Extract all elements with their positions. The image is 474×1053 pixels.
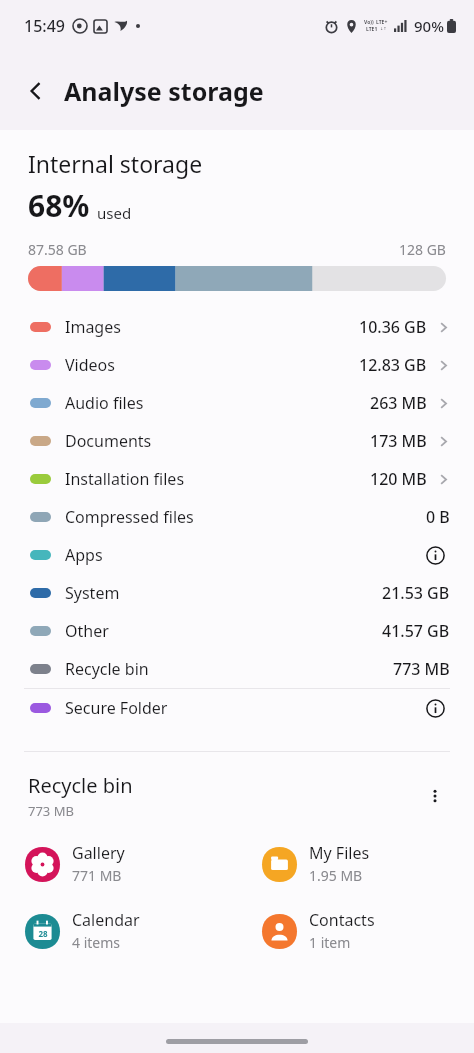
- button[interactable]: Compressed files: [0, 498, 474, 536]
- staticText: ↓↑: [380, 26, 387, 31]
- staticText: 41.57 GB: [382, 620, 450, 642]
- other: Info about Secure Folder: [420, 693, 450, 723]
- staticText: 1.95 MB: [309, 866, 363, 885]
- staticText: Compressed files: [65, 506, 426, 528]
- button[interactable]: Gallery: [0, 838, 237, 889]
- staticText: Internal storage: [28, 148, 203, 179]
- staticText: 4 items: [72, 933, 121, 952]
- staticText: 0 B: [426, 506, 450, 528]
- button[interactable]: Audio files: [0, 384, 474, 422]
- staticText: Analyse storage: [64, 74, 264, 108]
- staticText: Images: [65, 316, 359, 338]
- button[interactable]: Apps: [0, 536, 474, 574]
- staticText: 128 GB: [399, 240, 446, 259]
- staticText: Calendar: [72, 909, 140, 931]
- other: Info about Apps: [420, 540, 450, 570]
- staticText: 15:49: [24, 15, 65, 37]
- button[interactable]: Other: [0, 612, 474, 650]
- staticText: 87.58 GB: [28, 240, 87, 259]
- button[interactable]: Installation files: [0, 460, 474, 498]
- button[interactable]: Recycle bin: [0, 650, 474, 688]
- button[interactable]: Contacts: [237, 905, 474, 956]
- button[interactable]: 28: [0, 905, 237, 956]
- staticText: 21.53 GB: [382, 582, 450, 604]
- staticText: LTE1: [366, 26, 378, 33]
- staticText: 1 item: [309, 933, 351, 952]
- staticText: 173 MB: [370, 430, 427, 452]
- button[interactable]: Images: [0, 308, 474, 346]
- staticText: Apps: [65, 544, 420, 566]
- staticText: 90%: [414, 16, 444, 36]
- staticText: used: [97, 203, 132, 223]
- staticText: 773 MB: [28, 802, 74, 820]
- staticText: Other: [65, 620, 382, 642]
- staticText: Audio files: [65, 392, 370, 414]
- staticText: 773 MB: [393, 658, 450, 680]
- button[interactable]: My Files: [237, 838, 474, 889]
- staticText: Recycle bin: [28, 772, 133, 799]
- staticText: Vo)): [364, 19, 374, 26]
- button[interactable]: System: [0, 574, 474, 612]
- button[interactable]: Back: [14, 69, 58, 113]
- button[interactable]: Documents: [0, 422, 474, 460]
- staticText: Videos: [65, 354, 359, 376]
- staticText: 263 MB: [370, 392, 427, 414]
- button[interactable]: Videos: [0, 346, 474, 384]
- staticText: System: [65, 582, 382, 604]
- staticText: 10.36 GB: [359, 316, 427, 338]
- staticText: My Files: [309, 842, 370, 864]
- staticText: Gallery: [72, 842, 125, 864]
- staticText: 120 MB: [370, 468, 427, 490]
- button[interactable]: More options: [418, 779, 452, 813]
- staticText: Recycle bin: [65, 658, 393, 680]
- staticText: 771 MB: [72, 866, 122, 885]
- staticText: Documents: [65, 430, 370, 452]
- staticText: Contacts: [309, 909, 375, 931]
- staticText: 68%: [28, 185, 90, 226]
- staticText: 28: [38, 928, 48, 939]
- staticText: LTE+: [376, 19, 388, 26]
- button[interactable]: Secure Folder: [0, 689, 474, 727]
- staticText: Installation files: [65, 468, 370, 490]
- staticText: 12.83 GB: [359, 354, 427, 376]
- staticText: Secure Folder: [65, 697, 420, 719]
